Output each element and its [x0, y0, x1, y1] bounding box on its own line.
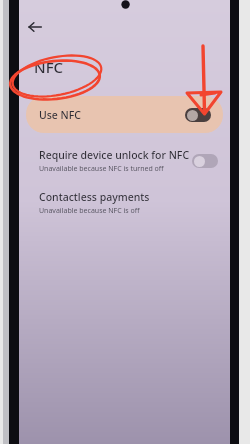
button[interactable]: Use NFC toggle [185, 108, 211, 122]
button[interactable]: Contactless payments [19, 190, 230, 216]
button[interactable]: Use NFC [26, 96, 223, 133]
staticText: Unavailable because NFC is off [39, 206, 140, 216]
button[interactable]: Toggle [192, 154, 218, 168]
button[interactable]: Require device unlock for NFC [19, 148, 230, 174]
staticText: Contactless payments [39, 190, 150, 204]
button[interactable]: Back [21, 13, 49, 41]
staticText: Unavailable because NFC is turned off [39, 164, 164, 174]
staticText: Require device unlock for NFC [39, 148, 190, 162]
staticText: NFC [34, 57, 64, 77]
staticText: Use NFC [39, 108, 81, 122]
